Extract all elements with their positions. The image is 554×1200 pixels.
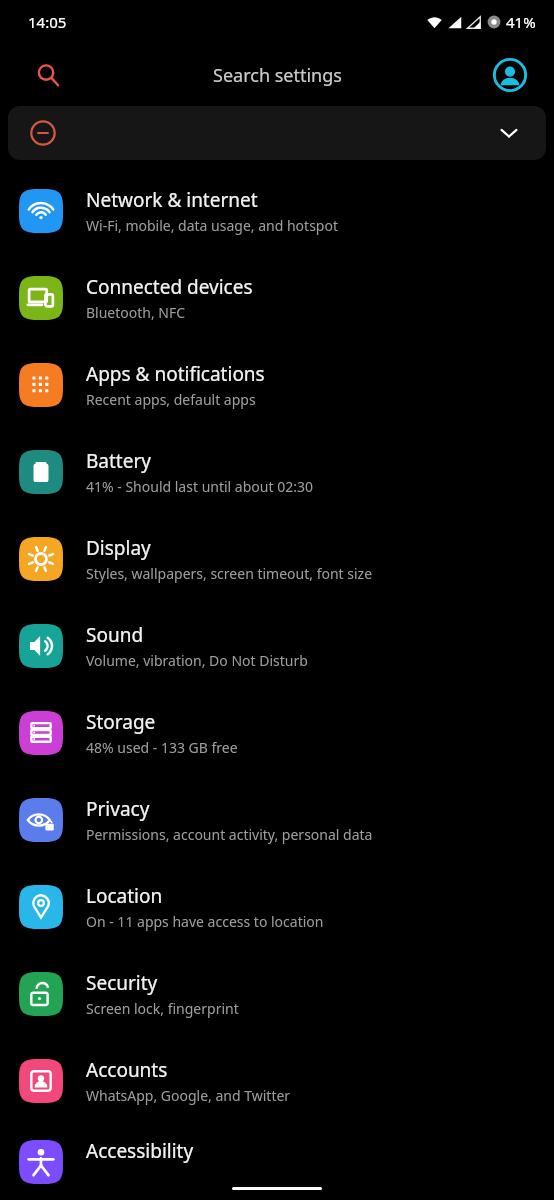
button[interactable]: Privacy — [0, 776, 554, 863]
staticText: 41% - Should last until about 02:30 — [86, 477, 313, 496]
staticText: Recent apps, default apps — [86, 390, 256, 409]
staticText: Location — [86, 883, 163, 909]
button[interactable]: Accessibility — [0, 1124, 554, 1200]
button[interactable]: Account — [488, 53, 532, 97]
staticText: Bluetooth, NFC — [86, 303, 186, 322]
button[interactable]: Do not disturb — [8, 106, 546, 160]
staticText: Display — [86, 535, 151, 561]
staticText: Sound — [86, 622, 144, 648]
staticText: Volume, vibration, Do Not Disturb — [86, 651, 308, 670]
staticText: Connected devices — [86, 274, 253, 300]
button[interactable]: Display — [0, 515, 554, 602]
staticText: 41% — [506, 12, 536, 32]
button[interactable]: Search — [24, 51, 72, 99]
button[interactable]: Security — [0, 950, 554, 1037]
button[interactable]: Network & internet — [0, 167, 554, 254]
staticText: Screen lock, fingerprint — [86, 999, 239, 1018]
staticText: Apps & notifications — [86, 361, 265, 387]
staticText: Privacy — [86, 796, 150, 822]
button[interactable]: Connected devices — [0, 254, 554, 341]
staticText: On - 11 apps have access to location — [86, 912, 324, 931]
staticText: Accessibility — [86, 1138, 194, 1164]
staticText: 14:05 — [28, 12, 67, 32]
staticText: Search settings — [213, 63, 342, 88]
button[interactable]: Accounts — [0, 1037, 554, 1124]
other: Do not disturb — [30, 120, 56, 146]
staticText: Styles, wallpapers, screen timeout, font… — [86, 564, 373, 583]
staticText: Security — [86, 970, 158, 996]
staticText: WhatsApp, Google, and Twitter — [86, 1086, 291, 1105]
button[interactable]: Battery — [0, 428, 554, 515]
button[interactable]: Location — [0, 863, 554, 950]
staticText: 48% used - 133 GB free — [86, 738, 238, 757]
staticText: Storage — [86, 709, 156, 735]
button[interactable]: Apps & notifications — [0, 341, 554, 428]
staticText: Battery — [86, 448, 151, 474]
staticText: Permissions, account activity, personal … — [86, 825, 373, 844]
staticText: Network & internet — [86, 187, 258, 213]
button[interactable]: Sound — [0, 602, 554, 689]
staticText: Accounts — [86, 1057, 168, 1083]
button[interactable]: Storage — [0, 689, 554, 776]
staticText: Wi-Fi, mobile, data usage, and hotspot — [86, 216, 338, 235]
